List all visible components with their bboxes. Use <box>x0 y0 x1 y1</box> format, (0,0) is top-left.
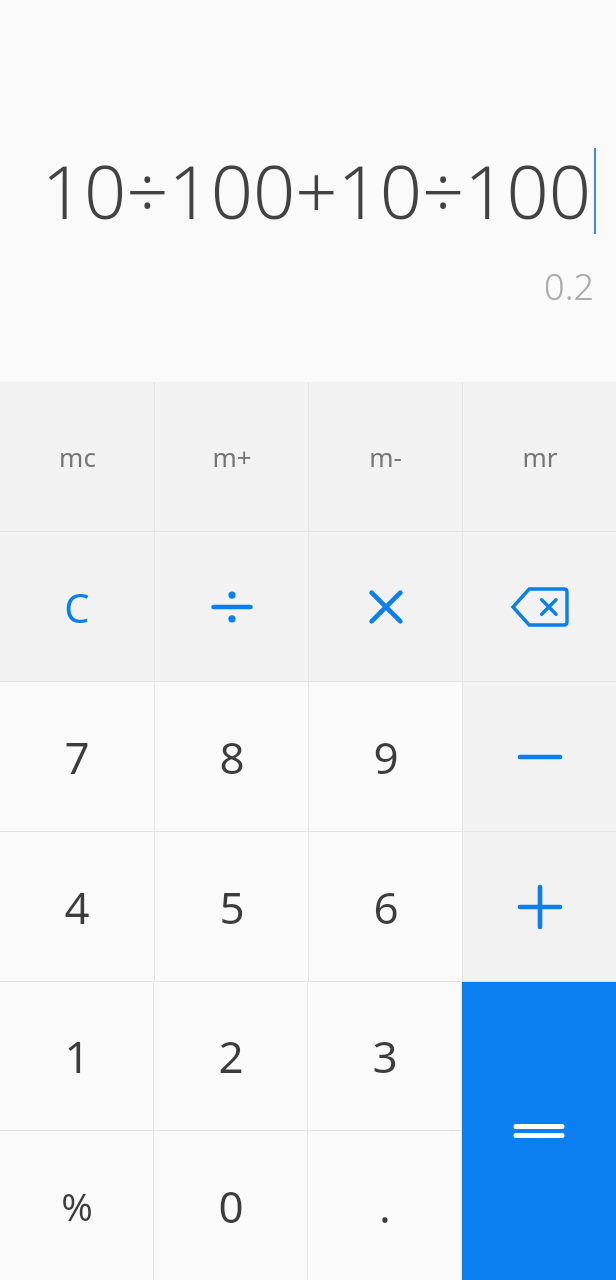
button[interactable]: Minus <box>463 682 616 831</box>
button[interactable]: m- <box>309 382 462 531</box>
button[interactable]: Divide <box>155 532 308 681</box>
button[interactable]: . <box>308 1131 461 1280</box>
button[interactable]: mr <box>463 382 616 531</box>
button[interactable]: C <box>0 532 154 681</box>
staticText: C <box>64 580 90 634</box>
button[interactable]: Plus <box>463 832 616 981</box>
staticText: m+ <box>212 439 252 474</box>
staticText: % <box>61 1180 93 1232</box>
staticText: 0 <box>218 1176 244 1236</box>
staticText: 10÷100+10÷100 <box>41 140 591 241</box>
staticText: 5 <box>219 877 245 937</box>
staticText: 7 <box>64 727 90 787</box>
button[interactable]: 0 <box>154 1131 307 1280</box>
staticText: 0.2 <box>544 262 594 311</box>
staticText: 2 <box>218 1026 244 1086</box>
button[interactable]: 7 <box>0 682 154 831</box>
staticText: mc <box>59 439 96 474</box>
button[interactable]: % <box>0 1131 153 1280</box>
staticText: 4 <box>64 877 90 937</box>
staticText: 3 <box>372 1026 398 1086</box>
staticText: m- <box>369 439 402 474</box>
button[interactable]: m+ <box>155 382 308 531</box>
button[interactable]: Equals <box>462 982 616 1280</box>
button[interactable]: 8 <box>155 682 308 831</box>
staticText: 1 <box>64 1026 90 1086</box>
button[interactable]: 6 <box>309 832 462 981</box>
staticText: 8 <box>219 727 245 787</box>
button[interactable]: mc <box>0 382 154 531</box>
staticText: mr <box>522 439 558 474</box>
button[interactable]: 3 <box>308 982 461 1130</box>
button[interactable]: 5 <box>155 832 308 981</box>
button[interactable]: 1 <box>0 982 153 1130</box>
button[interactable]: 4 <box>0 832 154 981</box>
staticText: 9 <box>373 727 399 787</box>
button[interactable]: Backspace <box>463 532 616 681</box>
staticText: . <box>379 1176 391 1236</box>
button[interactable]: 2 <box>154 982 307 1130</box>
button[interactable]: Multiply <box>309 532 462 681</box>
button[interactable]: 9 <box>309 682 462 831</box>
staticText: 6 <box>373 877 399 937</box>
